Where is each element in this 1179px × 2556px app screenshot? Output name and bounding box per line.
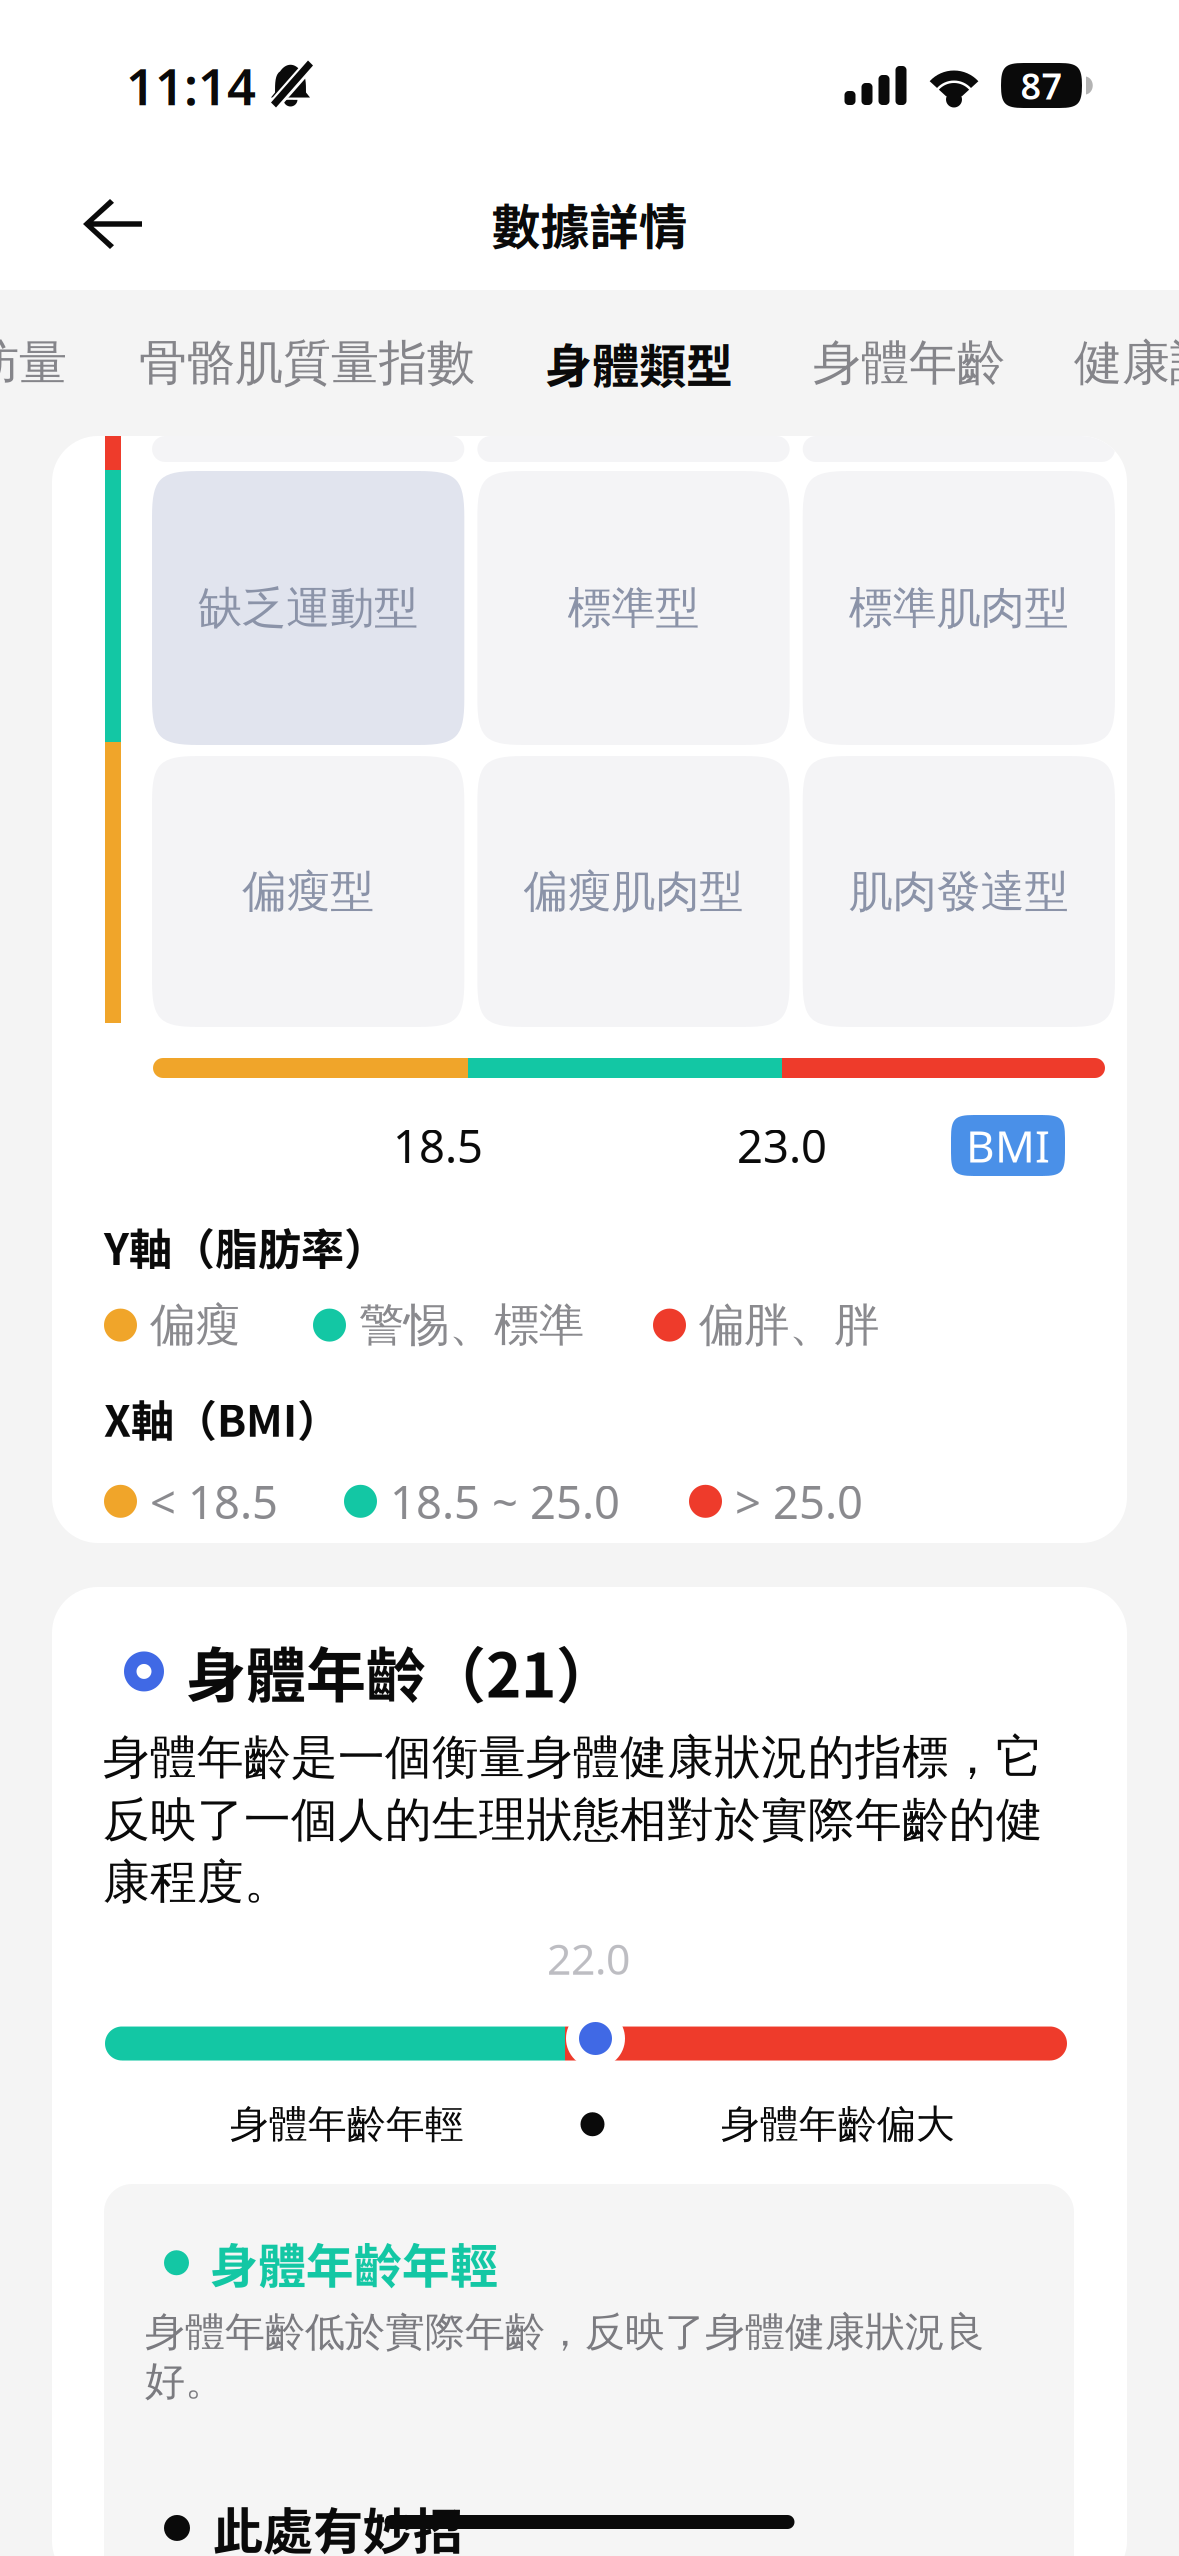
button[interactable]: 骨骼肌質量指數 <box>139 290 475 436</box>
staticText: 身體年齡年輕 <box>230 2100 464 2148</box>
staticText: 身體年齡是一個衡量身體健康狀況的指標，它反映了一個人的生理狀態相對於實際年齡的健… <box>103 1729 1043 1911</box>
staticText: 偏瘦 <box>150 1297 240 1353</box>
button[interactable]: 缺乏運動型 <box>152 471 464 745</box>
staticText: 數據詳情 <box>491 188 687 259</box>
staticText: > 25.0 <box>735 1471 863 1531</box>
staticText: Y軸（脂肪率） <box>104 1215 387 1277</box>
staticText: 身體年齡低於實際年齡，反映了身體健康狀況良好。 <box>145 2307 985 2406</box>
staticText: 標準型 <box>567 581 699 635</box>
button[interactable]: 肌肉發達型 <box>803 756 1115 1027</box>
button[interactable]: 偏瘦型 <box>152 756 464 1027</box>
staticText: 偏胖、胖 <box>699 1297 879 1353</box>
button[interactable]: 肪量 <box>0 290 67 436</box>
button[interactable]: 身體年齡 <box>813 290 1005 436</box>
staticText: 偏瘦型 <box>242 864 374 918</box>
staticText: 身體年齡偏大 <box>721 2100 955 2148</box>
staticText: 此處有妙招 <box>213 2492 463 2556</box>
staticText: 偏瘦肌肉型 <box>523 864 743 918</box>
staticText: 骨骼肌質量指數 <box>139 333 475 392</box>
staticText: 身體年齡（21） <box>186 1628 616 1715</box>
staticText: 23.0 <box>737 1115 827 1176</box>
staticText: 87 <box>1020 62 1062 109</box>
staticText: 肌肉發達型 <box>849 864 1069 918</box>
staticText: 身體年齡年輕 <box>210 2228 498 2297</box>
button[interactable]: 偏瘦肌肉型 <box>477 756 790 1027</box>
staticText: < 18.5 <box>150 1471 278 1531</box>
staticText: 身體年齡 <box>813 333 1005 392</box>
staticText: 身體類型 <box>545 329 733 397</box>
staticText: 18.5 ~ 25.0 <box>390 1471 620 1531</box>
staticText: 缺乏運動型 <box>198 581 418 635</box>
staticText: 標準肌肉型 <box>849 581 1069 635</box>
button[interactable]: 健康評估 <box>1074 290 1179 436</box>
staticText: 警惕、標準 <box>359 1297 584 1353</box>
button[interactable]: Back <box>58 173 168 275</box>
button[interactable]: BMI <box>951 1115 1065 1176</box>
staticText: 18.5 <box>393 1115 483 1176</box>
button[interactable]: 身體類型 <box>545 290 733 436</box>
staticText: 健康評估 <box>1074 333 1179 392</box>
staticText: X軸（BMI） <box>104 1387 340 1449</box>
staticText: BMI <box>966 1116 1050 1175</box>
button[interactable]: 標準型 <box>477 471 790 745</box>
staticText: 22.0 <box>547 1930 630 1986</box>
button[interactable]: 標準肌肉型 <box>803 471 1115 745</box>
staticText: 11:14 <box>126 52 256 119</box>
staticText: 肪量 <box>0 333 67 392</box>
